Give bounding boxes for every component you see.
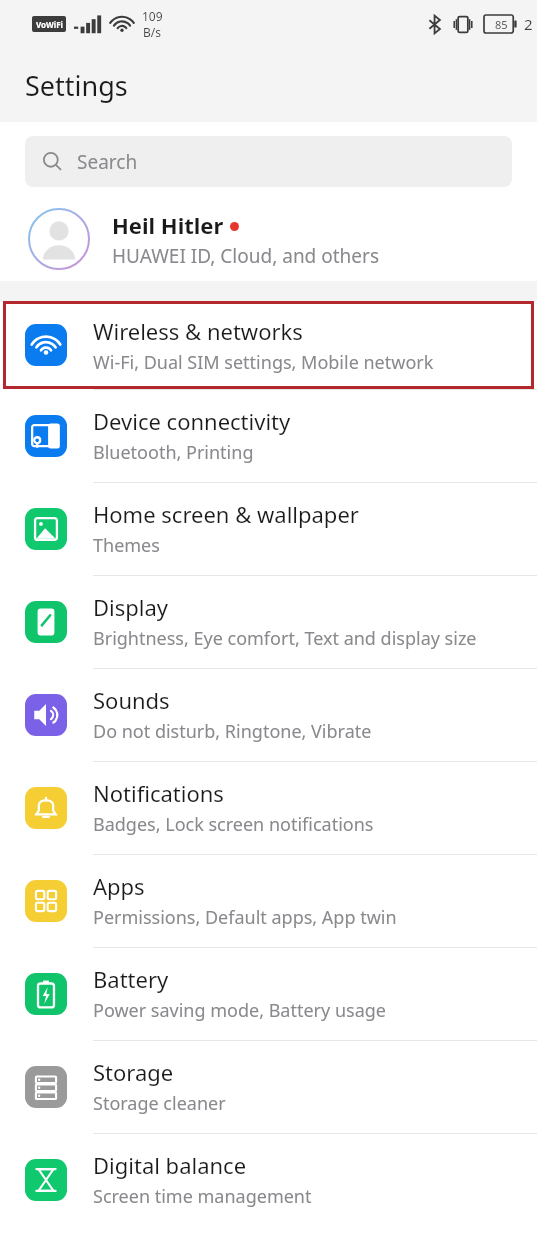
staticText: Home screen & wallpaper	[93, 499, 359, 529]
staticText: 109	[142, 8, 163, 24]
staticText: Storage	[93, 1057, 174, 1087]
staticText: Power saving mode, Battery usage	[93, 998, 386, 1023]
staticText: Apps	[93, 871, 145, 901]
staticText: VoWiFi	[36, 19, 63, 30]
button[interactable]: Home screen & wallpaper	[0, 482, 537, 575]
staticText: Themes	[93, 533, 160, 558]
button[interactable]: Apps	[0, 854, 537, 947]
staticText: Search	[77, 149, 138, 175]
staticText: Battery	[93, 964, 169, 994]
staticText: Heil Hitler	[112, 210, 224, 240]
staticText: Settings	[25, 67, 128, 104]
button[interactable]: Heil Hitler	[0, 197, 537, 281]
button[interactable]: Display	[0, 575, 537, 668]
button[interactable]: Storage	[0, 1040, 537, 1133]
staticText: Brightness, Eye comfort, Text and displa…	[93, 626, 477, 651]
staticText: Wireless & networks	[93, 316, 303, 346]
button[interactable]: Search	[25, 136, 512, 187]
button[interactable]: Wireless & networks	[3, 301, 534, 389]
staticText: B/s	[143, 24, 162, 40]
staticText: Storage cleaner	[93, 1091, 226, 1116]
staticText: Screen time management	[93, 1184, 312, 1209]
button[interactable]: Notifications	[0, 761, 537, 854]
staticText: Device connectivity	[93, 406, 291, 436]
button[interactable]: Sounds	[0, 668, 537, 761]
staticText: Digital balance	[93, 1150, 247, 1180]
button[interactable]: Device connectivity	[0, 389, 537, 482]
staticText: Display	[93, 592, 169, 622]
staticText: HUAWEI ID, Cloud, and others	[112, 243, 380, 269]
staticText: Permissions, Default apps, App twin	[93, 905, 397, 930]
staticText: 85	[495, 17, 508, 32]
staticText: Sounds	[93, 685, 170, 715]
staticText: Badges, Lock screen notifications	[93, 812, 374, 837]
staticText: Bluetooth, Printing	[93, 440, 254, 465]
staticText: Do not disturb, Ringtone, Vibrate	[93, 719, 372, 744]
staticText: Notifications	[93, 778, 224, 808]
staticText: 2	[524, 14, 533, 34]
button[interactable]: Digital balance	[0, 1133, 537, 1226]
button[interactable]: Battery	[0, 947, 537, 1040]
staticText: Wi-Fi, Dual SIM settings, Mobile network	[93, 350, 434, 375]
